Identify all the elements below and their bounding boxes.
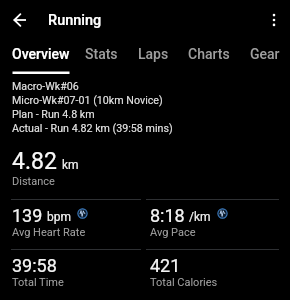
- staticText: Avg Pace: [150, 226, 196, 239]
- button[interactable]: Gear: [240, 40, 290, 75]
- staticText: Stats: [85, 46, 118, 62]
- staticText: 8:18: [150, 205, 185, 226]
- staticText: Distance: [12, 175, 55, 188]
- button[interactable]: 421: [146, 249, 279, 289]
- staticText: km: [62, 158, 79, 172]
- staticText: Gear: [250, 46, 280, 62]
- button[interactable]: More options: [256, 2, 290, 38]
- staticText: 4.82: [12, 148, 57, 175]
- button[interactable]: 8:18: [146, 199, 279, 239]
- button[interactable]: Charts: [178, 40, 240, 75]
- staticText: Total Time: [12, 276, 64, 289]
- button[interactable]: Back: [2, 2, 38, 38]
- button[interactable]: Overview: [3, 40, 79, 75]
- staticText: Charts: [188, 46, 230, 62]
- button[interactable]: 39:58: [11, 249, 141, 289]
- button[interactable]: Stats: [77, 40, 126, 75]
- staticText: Macro-Wk#06 Micro-Wk#07-01 (10km Novice)…: [12, 79, 173, 135]
- staticText: Avg Heart Rate: [12, 226, 86, 239]
- staticText: /km: [189, 210, 211, 224]
- staticText: 139: [12, 205, 43, 226]
- staticText: 421: [150, 255, 181, 276]
- staticText: Total Calories: [150, 276, 218, 289]
- staticText: 39:58: [12, 255, 57, 276]
- staticText: Running: [48, 12, 102, 29]
- staticText: Laps: [138, 46, 169, 62]
- button[interactable]: 139: [11, 199, 141, 239]
- staticText: bpm: [47, 210, 71, 224]
- button[interactable]: Laps: [128, 40, 178, 75]
- staticText: Overview: [12, 46, 70, 62]
